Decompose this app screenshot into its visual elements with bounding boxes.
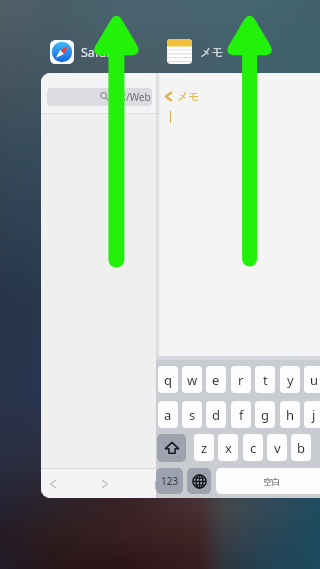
- button[interactable]: s: [182, 401, 202, 428]
- staticText: 空白: [263, 476, 281, 487]
- button[interactable]: u: [304, 366, 320, 393]
- button[interactable]: t: [255, 366, 275, 393]
- staticText: u: [310, 371, 319, 389]
- button[interactable]: w: [182, 366, 202, 393]
- staticText: j: [312, 406, 316, 424]
- button[interactable]: Share: [147, 469, 157, 498]
- button[interactable]: d: [206, 401, 226, 428]
- button[interactable]: g: [255, 401, 275, 428]
- button[interactable]: c: [243, 434, 263, 461]
- button[interactable]: y: [280, 366, 300, 393]
- button[interactable]: 席/Web: [47, 88, 152, 106]
- button[interactable]: z: [194, 434, 214, 461]
- staticText: s: [189, 406, 196, 424]
- staticText: a: [164, 406, 172, 424]
- staticText: h: [286, 406, 295, 424]
- button[interactable]: Notes: [167, 39, 192, 64]
- button[interactable]: f: [231, 401, 251, 428]
- button[interactable]: e: [206, 366, 226, 393]
- button[interactable]: 123: [156, 468, 183, 494]
- staticText: g: [261, 406, 269, 424]
- staticText: r: [238, 371, 244, 389]
- staticText: z: [201, 439, 208, 457]
- staticText: メモ: [177, 89, 200, 103]
- staticText: x: [225, 439, 232, 457]
- staticText: q: [164, 371, 172, 389]
- button[interactable]: h: [280, 401, 300, 428]
- staticText: d: [212, 406, 220, 424]
- staticText: y: [287, 371, 294, 389]
- button[interactable]: j: [304, 401, 320, 428]
- staticText: c: [250, 439, 257, 457]
- button[interactable]: Notes: [167, 39, 224, 64]
- button[interactable]: 空白: [216, 468, 320, 494]
- staticText: f: [239, 406, 244, 424]
- button[interactable]: b: [291, 434, 311, 461]
- staticText: w: [187, 371, 198, 389]
- staticText: Safari: [81, 44, 115, 61]
- staticText: メモ: [200, 45, 224, 59]
- staticText: 席/Web: [116, 90, 151, 104]
- button[interactable]: Shift: [157, 434, 186, 462]
- button[interactable]: a: [158, 401, 178, 428]
- button[interactable]: Forward: [93, 469, 117, 498]
- button[interactable]: Safari: [50, 40, 74, 64]
- button[interactable]: Switch keyboard: [187, 468, 211, 494]
- button[interactable]: x: [218, 434, 238, 461]
- button[interactable]: q: [158, 366, 178, 393]
- staticText: 123: [161, 474, 179, 488]
- staticText: t: [263, 371, 268, 389]
- button[interactable]: Safari: [50, 40, 115, 64]
- staticText: v: [274, 439, 281, 457]
- button[interactable]: Back: [41, 469, 65, 498]
- button[interactable]: メモ: [162, 89, 200, 103]
- staticText: e: [212, 371, 220, 389]
- button[interactable]: v: [267, 434, 287, 461]
- staticText: b: [297, 439, 305, 457]
- button[interactable]: r: [231, 366, 251, 393]
